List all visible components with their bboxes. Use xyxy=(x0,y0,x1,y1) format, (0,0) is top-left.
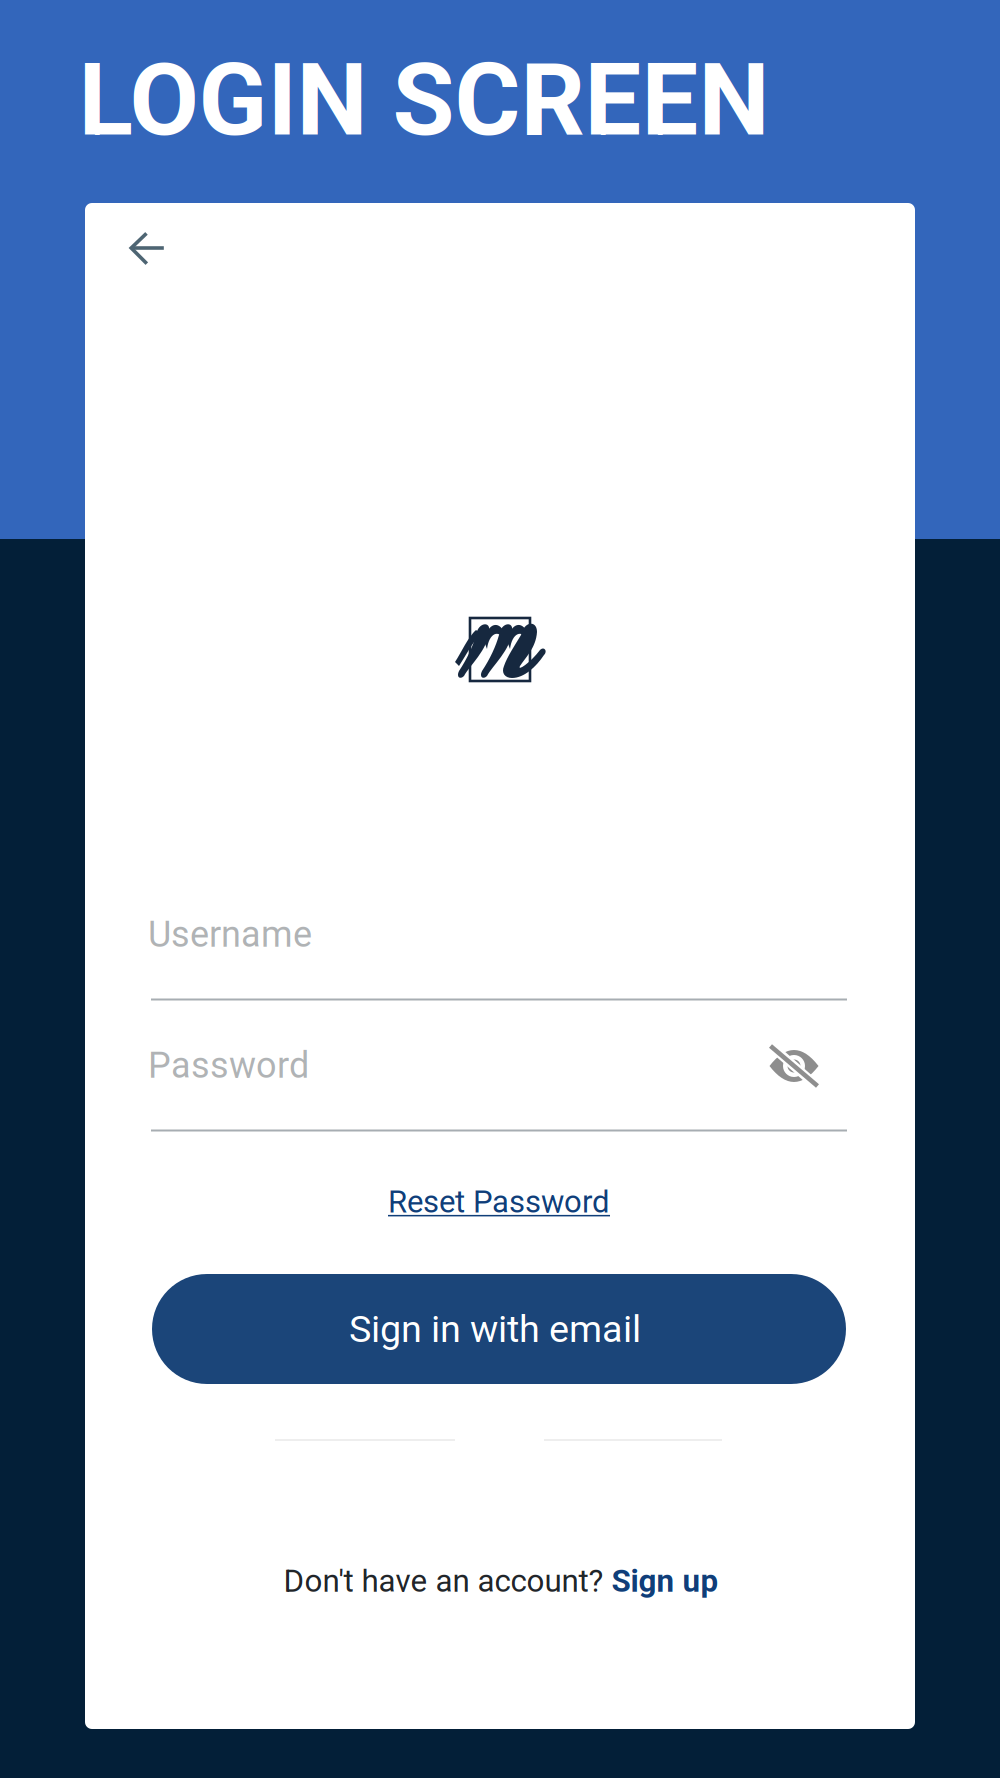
button[interactable]: Sign in with email xyxy=(152,1274,846,1384)
button[interactable]: Sign up xyxy=(611,1563,718,1599)
button[interactable]: Back xyxy=(107,208,187,288)
staticText: LOGIN SCREEN xyxy=(78,41,769,159)
staticText: Username xyxy=(148,913,312,956)
button[interactable]: Show password xyxy=(757,1031,831,1101)
staticText: Sign in with email xyxy=(349,1307,641,1351)
staticText: Sign up xyxy=(611,1563,718,1599)
staticText: Password xyxy=(148,1044,309,1087)
button[interactable]: Password xyxy=(151,1044,847,1131)
staticText: Don't have an account? xyxy=(283,1563,611,1599)
button[interactable]: Username xyxy=(151,913,847,1000)
button[interactable]: Reset Password xyxy=(388,1184,610,1220)
staticText: Reset Password xyxy=(388,1184,610,1220)
